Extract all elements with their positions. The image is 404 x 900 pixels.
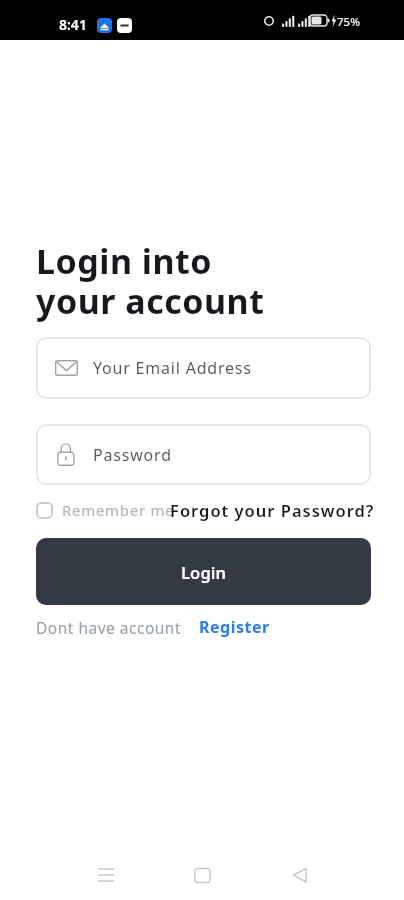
button[interactable] bbox=[284, 858, 316, 890]
staticText: Remember me bbox=[62, 500, 175, 520]
staticText: 8:41 bbox=[59, 15, 87, 34]
button[interactable]: Remember me bbox=[36, 500, 175, 520]
button[interactable] bbox=[187, 858, 219, 890]
staticText: Password bbox=[93, 444, 172, 466]
staticText: Login into your account bbox=[36, 238, 265, 324]
staticText: Login bbox=[181, 561, 227, 583]
staticText: 75% bbox=[337, 14, 360, 30]
button[interactable]: Register bbox=[199, 616, 270, 638]
staticText: Dont have account bbox=[36, 617, 182, 638]
button[interactable]: Password bbox=[36, 424, 371, 485]
button[interactable] bbox=[90, 858, 122, 890]
button[interactable]: Forgot your Password? bbox=[170, 499, 375, 521]
staticText: Your Email Address bbox=[93, 357, 252, 379]
button[interactable]: Your Email Address bbox=[36, 337, 371, 399]
button[interactable]: Login bbox=[36, 538, 371, 605]
